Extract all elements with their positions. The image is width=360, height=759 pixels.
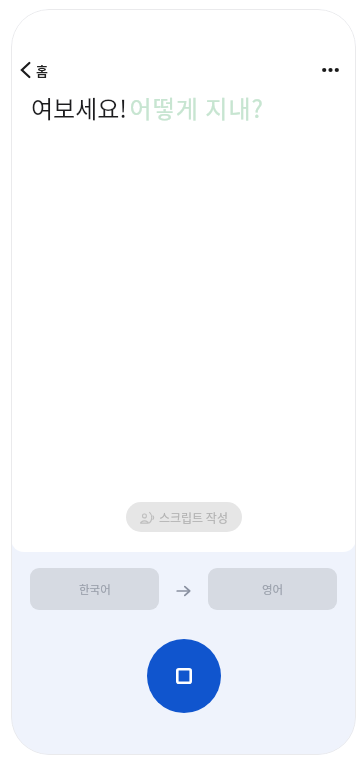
button[interactable]: 홈: [18, 59, 50, 81]
staticText: 한국어: [79, 581, 111, 598]
staticText: 홈: [36, 61, 48, 80]
button[interactable]: Stop recording: [147, 639, 221, 713]
button[interactable]: 영어: [208, 568, 337, 610]
staticText: 영어: [262, 581, 284, 598]
button[interactable]: 한국어: [30, 568, 159, 610]
staticText: 스크립트 작성: [159, 509, 228, 526]
button[interactable]: More options: [315, 59, 345, 81]
staticText: 여보세요! 어떻게 지내?: [31, 90, 265, 125]
button[interactable]: 스크립트 작성: [126, 502, 242, 532]
